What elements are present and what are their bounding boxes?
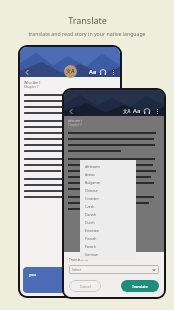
staticText: Chinese xyxy=(85,188,98,193)
staticText: German xyxy=(85,252,98,257)
staticText: Finnish xyxy=(85,236,97,241)
staticText: translate and read story in your native … xyxy=(28,30,146,37)
button[interactable]: Danish xyxy=(80,210,136,218)
button[interactable]: Translate xyxy=(121,280,159,292)
button[interactable]: Back xyxy=(22,67,32,77)
staticText: Chapter 7 xyxy=(68,123,82,127)
staticText: Cancel xyxy=(80,284,91,289)
button[interactable]: Cancel xyxy=(69,280,101,292)
staticText: 文A xyxy=(123,108,131,114)
button[interactable]: Finnish xyxy=(80,234,136,242)
staticText: Croatian xyxy=(85,196,99,201)
staticText: Estonian xyxy=(85,228,99,233)
button[interactable]: Czech xyxy=(80,202,136,210)
button[interactable]: German xyxy=(80,250,136,258)
staticText: Bulgarian xyxy=(85,180,101,185)
button[interactable]: More options xyxy=(152,106,162,116)
staticText: you xyxy=(29,272,36,277)
staticText: Chapter 7 xyxy=(24,85,39,89)
staticText: 文A xyxy=(66,68,75,75)
staticText: Dutch xyxy=(85,220,95,225)
button[interactable]: Afrikaans xyxy=(80,162,136,170)
button[interactable]: Listen xyxy=(142,106,152,116)
staticText: Translate xyxy=(132,284,148,289)
button[interactable]: More options xyxy=(108,67,118,77)
button[interactable]: Back xyxy=(66,106,76,116)
button[interactable]: Croatian xyxy=(80,194,136,202)
button[interactable]: you xyxy=(23,267,75,293)
staticText: Who Am I xyxy=(24,80,41,85)
staticText: French xyxy=(85,244,96,249)
staticText: Translate xyxy=(68,14,107,26)
staticText: Afrikaans xyxy=(85,164,100,169)
button[interactable]: Chinese xyxy=(80,186,136,194)
button[interactable]: Translate xyxy=(122,106,132,116)
staticText: who am i xyxy=(68,119,82,123)
button[interactable]: Text size xyxy=(132,106,142,116)
button[interactable]: French xyxy=(80,242,136,250)
staticText: Select xyxy=(72,268,81,272)
button[interactable]: Text size xyxy=(88,67,98,77)
button[interactable]: Dutch xyxy=(80,218,136,226)
staticText: Danish xyxy=(85,212,97,217)
staticText: Aa xyxy=(89,68,97,76)
button[interactable]: Select xyxy=(69,265,159,274)
button[interactable]: Bulgarian xyxy=(80,178,136,186)
button[interactable]: Arabic xyxy=(80,170,136,178)
staticText: Czech xyxy=(85,204,95,209)
button[interactable]: Estonian xyxy=(80,226,136,234)
button[interactable]: Translate xyxy=(64,65,77,78)
staticText: Arabic xyxy=(85,172,95,177)
staticText: Aa xyxy=(133,107,141,115)
staticText: Translate to xyxy=(69,257,88,262)
button[interactable]: Listen xyxy=(98,67,108,77)
